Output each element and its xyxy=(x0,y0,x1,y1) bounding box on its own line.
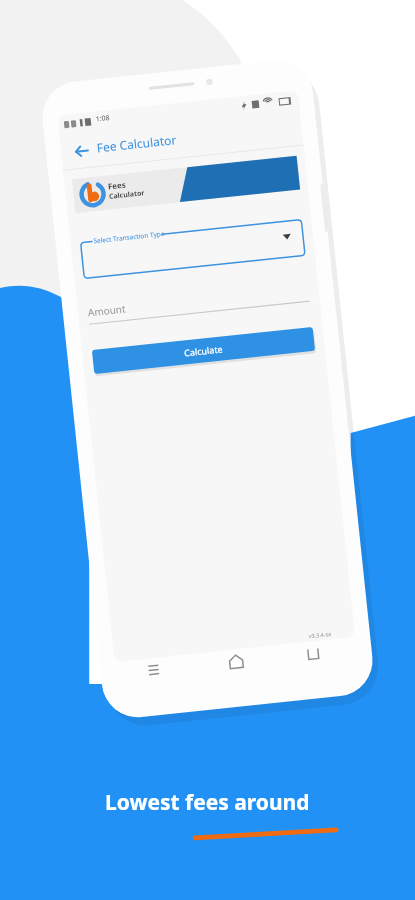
button[interactable]: Fee Calculator screenshot, Lowest fees a… xyxy=(0,0,415,900)
